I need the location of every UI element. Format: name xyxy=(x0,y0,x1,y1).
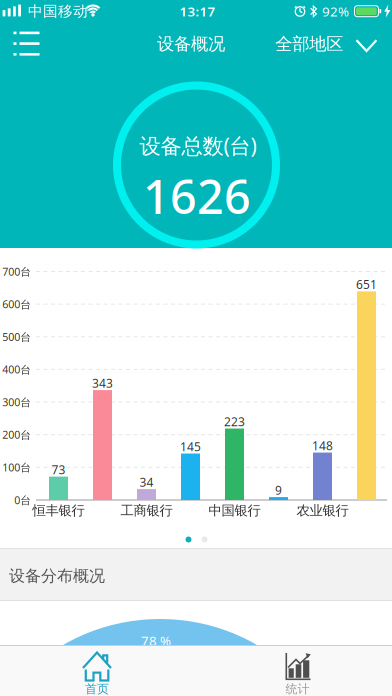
staticText: 148 xyxy=(312,438,333,453)
staticText: 农业银行 xyxy=(296,502,348,519)
staticText: 全部地区 xyxy=(275,33,343,55)
staticText: 中国移动 xyxy=(28,2,88,20)
staticText: 200台 xyxy=(2,428,31,442)
staticText: 92% xyxy=(322,2,349,20)
staticText: 400台 xyxy=(2,362,31,376)
staticText: 700台 xyxy=(2,264,31,279)
staticText: 恒丰银行 xyxy=(32,502,84,519)
staticText: 工商银行 xyxy=(120,502,172,519)
staticText: 78 % xyxy=(141,632,171,649)
staticText: 223 xyxy=(224,414,245,429)
staticText: 设备概况 xyxy=(157,33,225,55)
staticText: 9 xyxy=(275,482,282,498)
staticText: 设备分布概况 xyxy=(9,566,105,586)
staticText: 343 xyxy=(92,375,113,391)
button[interactable]: Menu xyxy=(6,26,46,62)
staticText: 100台 xyxy=(2,460,31,474)
staticText: 首页 xyxy=(85,682,109,696)
button[interactable]: 首页 xyxy=(0,645,196,696)
staticText: 300台 xyxy=(2,395,31,409)
staticText: 651 xyxy=(356,276,377,292)
staticText: 统计 xyxy=(285,682,309,696)
staticText: 设备总数(台) xyxy=(139,131,256,160)
staticText: 500台 xyxy=(2,330,31,344)
staticText: 34 xyxy=(139,474,153,490)
staticText: 73 xyxy=(51,462,65,477)
staticText: 145 xyxy=(180,439,201,454)
staticText: 13:17 xyxy=(179,2,215,20)
button[interactable]: 全部地区 xyxy=(262,28,382,60)
staticText: 中国银行 xyxy=(208,502,260,519)
staticText: 1626 xyxy=(143,165,251,227)
button[interactable]: 统计 xyxy=(196,645,392,696)
staticText: 0台 xyxy=(14,493,31,507)
staticText: 600台 xyxy=(2,297,31,311)
